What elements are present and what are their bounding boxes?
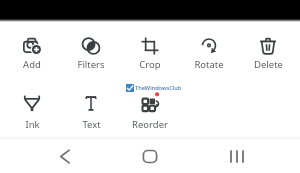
staticText: Delete (254, 58, 283, 71)
button[interactable]: Add (4, 33, 60, 73)
staticText: Text (82, 118, 101, 131)
button[interactable]: Back (43, 140, 87, 173)
button[interactable]: Ink (4, 90, 60, 133)
button[interactable]: Filters (63, 33, 119, 73)
button[interactable]: Crop (122, 33, 178, 73)
staticText: Rotate (194, 58, 224, 71)
button[interactable]: Reorder (122, 90, 178, 133)
staticText: Crop (139, 58, 161, 71)
button[interactable]: Recent apps (215, 140, 259, 173)
button[interactable]: Delete (240, 33, 296, 73)
button[interactable]: Rotate (181, 33, 237, 73)
button[interactable]: Home (128, 140, 172, 173)
staticText: Ink (25, 118, 40, 131)
button[interactable]: Text (63, 90, 119, 133)
staticText: Reorder (132, 118, 168, 131)
staticText: TheWindowsClub (135, 84, 182, 92)
staticText: Add (23, 58, 41, 71)
staticText: Filters (77, 58, 105, 71)
